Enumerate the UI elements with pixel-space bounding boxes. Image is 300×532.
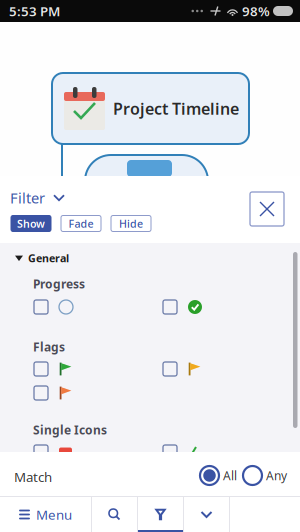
- button[interactable]: Filter: [10, 188, 65, 207]
- staticText: 98%: [242, 2, 270, 20]
- staticText: All: [223, 467, 237, 483]
- button[interactable]: Close: [250, 192, 284, 226]
- button[interactable]: Filter: [138, 497, 183, 532]
- button[interactable]: Collapse: [184, 497, 229, 532]
- button[interactable]: Fade: [61, 215, 101, 231]
- staticText: Project Timeline: [113, 98, 239, 119]
- button[interactable]: [34, 386, 72, 400]
- staticText: Match: [14, 468, 52, 486]
- staticText: Filter: [10, 188, 45, 207]
- button[interactable]: [34, 362, 72, 376]
- staticText: Flags: [33, 339, 65, 355]
- staticText: Hide: [119, 216, 143, 231]
- button[interactable]: [163, 362, 201, 376]
- button[interactable]: Search: [92, 497, 137, 532]
- staticText: Any: [266, 467, 287, 483]
- staticText: General: [28, 251, 69, 265]
- button[interactable]: [34, 300, 73, 314]
- button[interactable]: Show: [11, 215, 51, 231]
- staticText: 5:53 PM: [9, 2, 60, 20]
- button[interactable]: [34, 445, 72, 459]
- button[interactable]: Any: [243, 466, 287, 485]
- staticText: Progress: [33, 276, 85, 292]
- staticText: Single Icons: [33, 422, 107, 438]
- staticText: Menu: [36, 506, 72, 523]
- button[interactable]: Menu: [0, 497, 91, 532]
- button[interactable]: All: [200, 466, 237, 485]
- button[interactable]: [163, 445, 201, 459]
- staticText: Show: [17, 216, 45, 231]
- button[interactable]: [163, 300, 202, 314]
- staticText: Fade: [68, 216, 93, 231]
- button[interactable]: Hide: [111, 215, 151, 231]
